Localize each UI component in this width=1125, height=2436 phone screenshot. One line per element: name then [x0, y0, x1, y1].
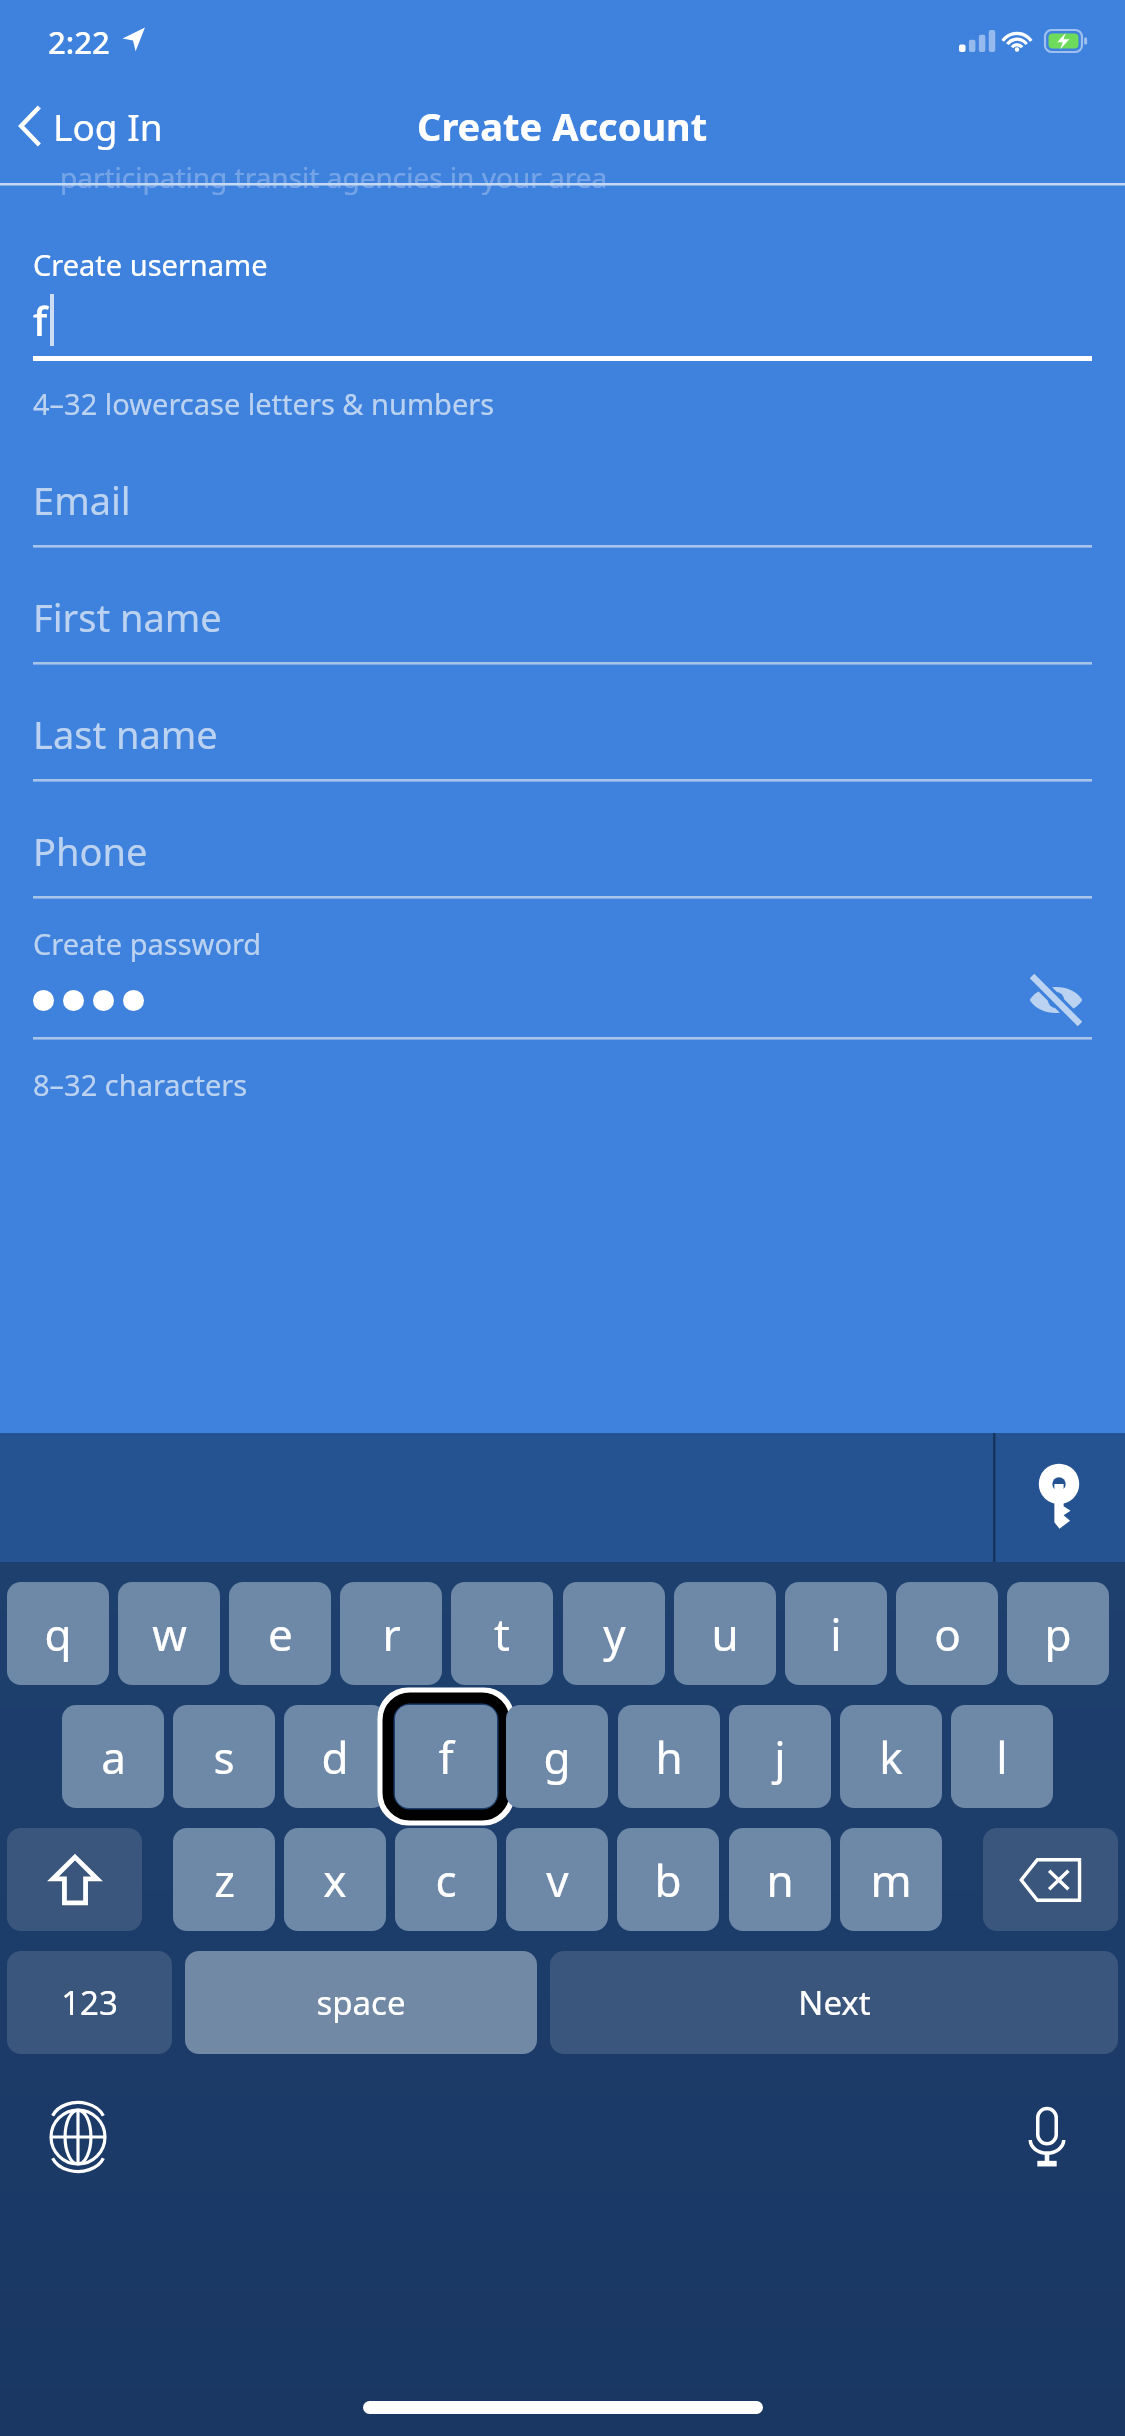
button[interactable]: d — [284, 1705, 386, 1808]
button[interactable]: m — [840, 1828, 942, 1931]
staticText: d — [321, 1727, 349, 1787]
staticText: q — [44, 1604, 72, 1664]
staticText: o — [934, 1604, 961, 1664]
staticText: Email — [33, 474, 131, 526]
button[interactable]: p — [1007, 1582, 1109, 1685]
button[interactable]: k — [840, 1705, 942, 1808]
staticText: x — [323, 1850, 347, 1910]
button[interactable]: f — [33, 284, 1092, 356]
button[interactable]: b — [617, 1828, 719, 1931]
staticText: f — [33, 293, 48, 347]
button[interactable]: 123 — [7, 1951, 172, 2054]
staticText: Log In — [53, 101, 163, 151]
staticText: Next — [798, 1980, 871, 2025]
button[interactable]: v — [506, 1828, 608, 1931]
staticText: p — [1044, 1604, 1072, 1664]
button[interactable]: Show password — [33, 963, 1092, 1037]
button[interactable]: t — [451, 1582, 553, 1685]
button[interactable]: x — [284, 1828, 386, 1931]
button[interactable]: Shift — [7, 1828, 142, 1931]
button[interactable]: Change keyboard — [33, 2092, 123, 2182]
staticText: 4–32 lowercase letters & numbers — [33, 384, 495, 423]
button[interactable]: f — [395, 1705, 497, 1808]
button[interactable]: z — [173, 1828, 275, 1931]
button[interactable]: Phone — [33, 820, 1092, 900]
button[interactable]: o — [896, 1582, 998, 1685]
staticText: space — [316, 1980, 406, 2025]
button[interactable]: g — [506, 1705, 608, 1808]
button[interactable]: Voice input — [1002, 2092, 1092, 2182]
staticText: h — [655, 1727, 683, 1787]
button[interactable]: Log In — [0, 95, 179, 157]
staticText: m — [870, 1850, 912, 1910]
staticText: a — [101, 1727, 126, 1787]
button[interactable]: Backspace — [983, 1828, 1118, 1931]
staticText: r — [382, 1604, 401, 1664]
staticText: e — [268, 1604, 293, 1664]
button[interactable]: a — [62, 1705, 164, 1808]
button[interactable]: s — [173, 1705, 275, 1808]
button[interactable]: space — [185, 1951, 537, 2054]
staticText: Create Account — [417, 100, 708, 152]
button[interactable]: First name — [33, 586, 1092, 666]
button[interactable]: w — [118, 1582, 220, 1685]
staticText: 2:22 — [48, 21, 110, 63]
staticText: participating transit agencies in your a… — [60, 158, 608, 196]
button[interactable]: r — [340, 1582, 442, 1685]
button[interactable]: Passwords — [993, 1433, 1125, 1562]
button[interactable]: h — [618, 1705, 720, 1808]
button[interactable]: q — [7, 1582, 109, 1685]
button[interactable]: Show password — [1020, 964, 1092, 1036]
button[interactable]: u — [674, 1582, 776, 1685]
button[interactable]: e — [229, 1582, 331, 1685]
button[interactable]: i — [785, 1582, 887, 1685]
staticText: c — [435, 1850, 457, 1910]
staticText: 8–32 characters — [33, 1065, 248, 1104]
button[interactable]: j — [729, 1705, 831, 1808]
staticText: t — [494, 1604, 510, 1664]
staticText: Phone — [33, 825, 148, 877]
button[interactable]: Email — [33, 469, 1092, 549]
button[interactable]: y — [563, 1582, 665, 1685]
button[interactable]: Next — [550, 1951, 1118, 2054]
staticText: 123 — [61, 1980, 118, 2025]
staticText: b — [654, 1850, 682, 1910]
staticText: z — [214, 1850, 235, 1910]
staticText: Create password — [33, 924, 262, 963]
button[interactable]: n — [729, 1828, 831, 1931]
staticText: l — [996, 1727, 1008, 1787]
staticText: u — [711, 1604, 739, 1664]
button[interactable]: Last name — [33, 703, 1092, 783]
staticText: n — [766, 1850, 794, 1910]
staticText: k — [879, 1727, 903, 1787]
staticText: Create username — [33, 245, 268, 284]
staticText: Last name — [33, 708, 218, 760]
staticText: j — [774, 1727, 786, 1787]
staticText: w — [152, 1604, 187, 1664]
staticText: g — [543, 1727, 571, 1787]
staticText: First name — [33, 591, 222, 643]
staticText: s — [213, 1727, 235, 1787]
button[interactable]: c — [395, 1828, 497, 1931]
staticText: i — [830, 1604, 842, 1664]
staticText: f — [438, 1727, 454, 1787]
button[interactable]: l — [951, 1705, 1053, 1808]
staticText: v — [546, 1850, 569, 1910]
staticText: y — [603, 1604, 626, 1664]
